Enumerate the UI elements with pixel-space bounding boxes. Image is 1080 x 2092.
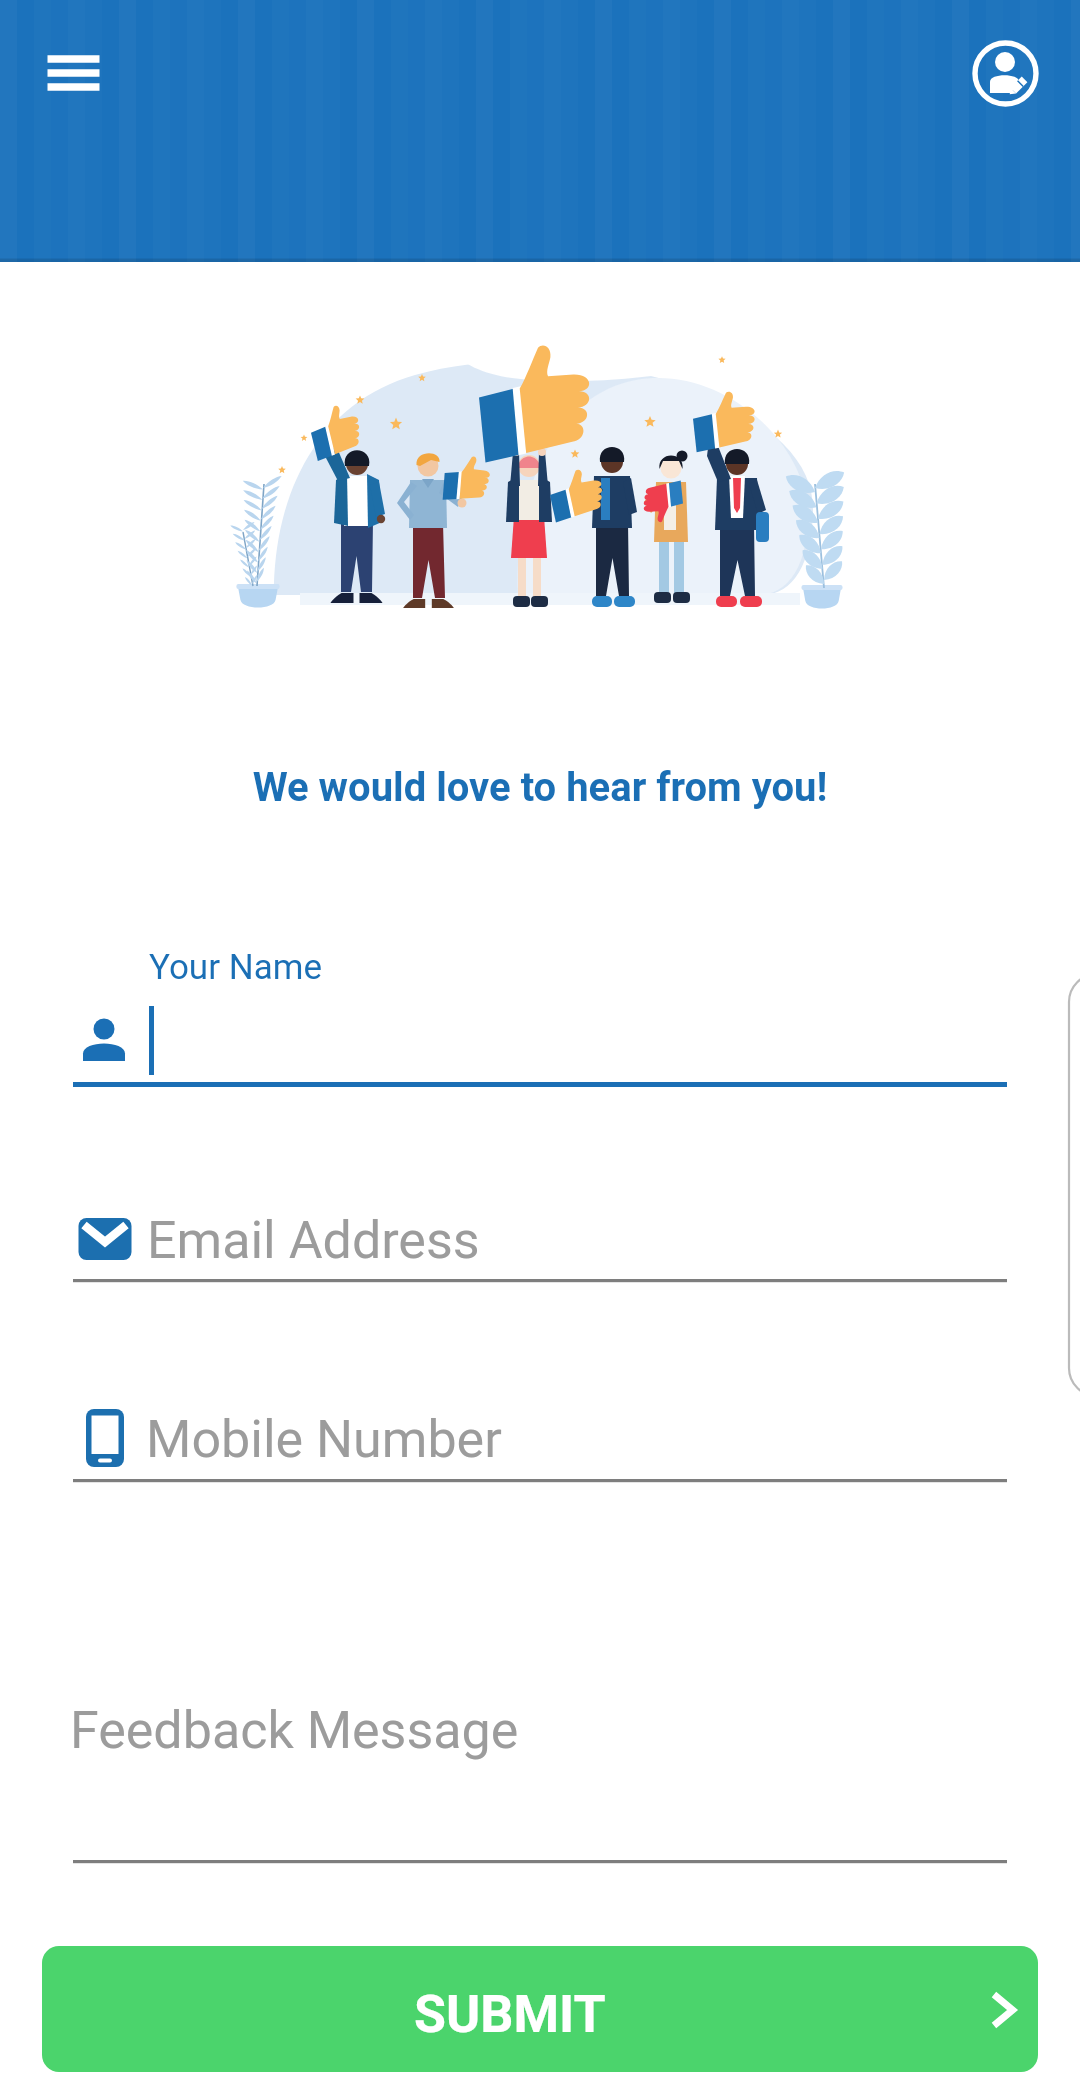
button[interactable]: SUBMIT	[42, 1946, 1038, 2072]
staticText: Mobile Number	[146, 1409, 502, 1470]
button[interactable]: Edit profile	[965, 33, 1046, 114]
staticText: Email Address	[147, 1210, 480, 1271]
staticText: SUBMIT	[414, 1984, 606, 2045]
button[interactable]: Email Address	[70, 1205, 1010, 1287]
staticText: We would love to hear from you!	[0, 764, 1080, 824]
button[interactable]: Mobile Number	[70, 1400, 1010, 1485]
staticText: Feedback Message	[70, 1700, 519, 1761]
button[interactable]: Your Name	[70, 940, 1010, 1092]
staticText: Your Name	[149, 947, 322, 988]
button[interactable]: Open navigation menu	[30, 38, 116, 108]
button[interactable]: Feedback Message	[70, 1700, 1010, 1865]
